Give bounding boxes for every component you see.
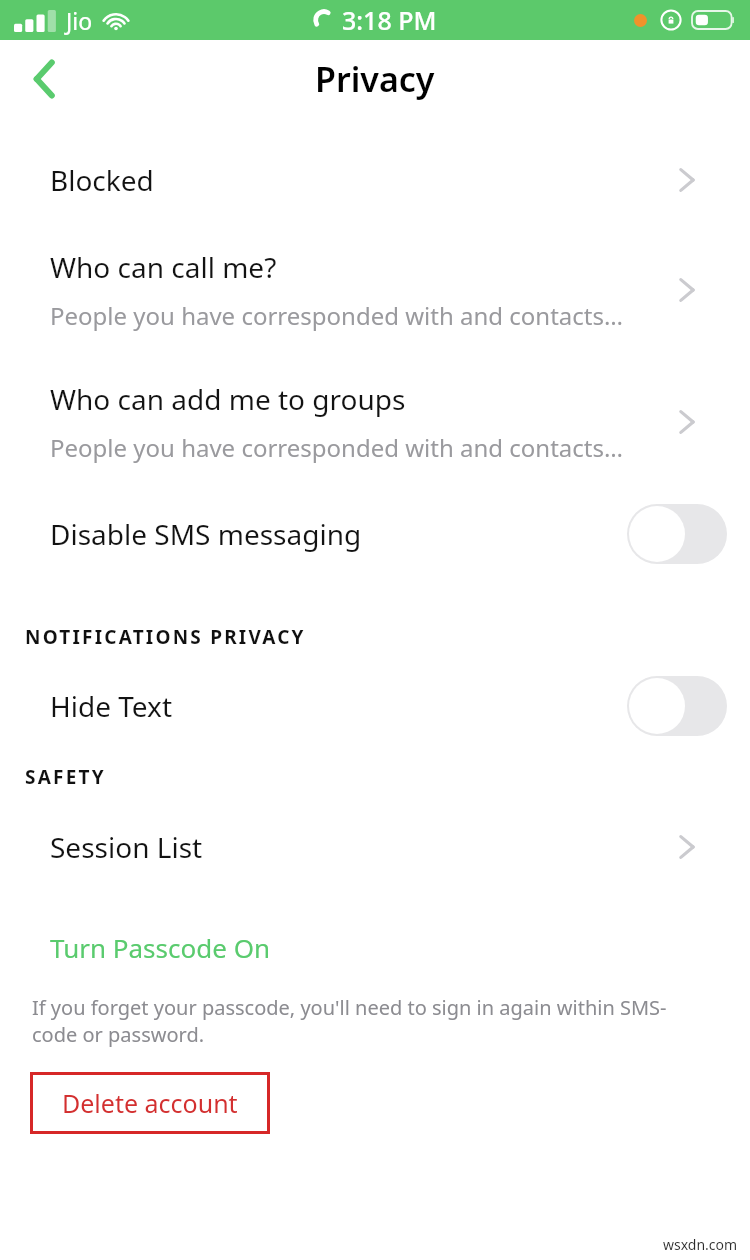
button[interactable]: Who can add me to groups [0, 356, 750, 488]
button[interactable]: Session List [0, 808, 750, 886]
button[interactable]: Blocked [0, 136, 750, 224]
button[interactable]: Hide Text [0, 664, 750, 748]
button[interactable]: Turn Passcode On [0, 918, 750, 976]
staticText: People you have corresponded with and co… [50, 299, 623, 332]
staticText: Who can add me to groups [50, 380, 406, 418]
staticText: Hide Text [50, 687, 173, 725]
button[interactable]: Who can call me? [0, 224, 750, 356]
staticText: Blocked [50, 161, 154, 199]
staticText: wsxdn.com [663, 1235, 738, 1254]
staticText: Delete account [62, 1086, 238, 1120]
staticText: Who can call me? [50, 248, 277, 286]
staticText: Disable SMS messaging [50, 515, 362, 553]
button[interactable]: Toggle Disable SMS messaging [627, 504, 727, 564]
staticText: 3:18 PM [342, 3, 437, 37]
button[interactable]: Disable SMS messaging [0, 488, 750, 580]
staticText: Privacy [315, 56, 435, 102]
button[interactable]: Toggle Hide Text [627, 676, 727, 736]
staticText: NOTIFICATIONS PRIVACY [25, 624, 306, 650]
button[interactable]: Back [0, 40, 88, 118]
staticText: Session List [50, 828, 203, 866]
staticText: People you have corresponded with and co… [50, 431, 623, 464]
staticText: SAFETY [25, 764, 106, 790]
button[interactable]: Delete account [30, 1072, 270, 1134]
staticText: Jio [66, 5, 93, 36]
staticText: Turn Passcode On [50, 930, 271, 965]
staticText: If you forget your passcode, you'll need… [32, 994, 694, 1048]
